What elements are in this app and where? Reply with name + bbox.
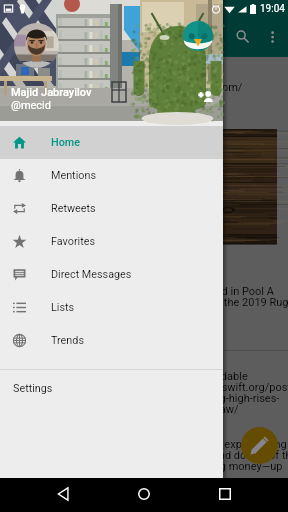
button[interactable]: Back bbox=[50, 480, 78, 508]
staticText: Several years experiencing bbox=[157, 438, 287, 451]
staticText: Settings bbox=[13, 382, 53, 395]
button[interactable]: Add account bbox=[197, 88, 215, 106]
staticText: Favorites bbox=[51, 235, 96, 248]
staticText: Retweets bbox=[51, 202, 96, 215]
staticText: of the 2019 Rugby World Cup bbox=[211, 296, 288, 309]
staticText: law/ bbox=[217, 403, 239, 416]
staticText: Mentions bbox=[51, 169, 96, 182]
button[interactable]: Favorites bbox=[0, 225, 223, 258]
staticText: building-high-rises- bbox=[187, 392, 280, 405]
button[interactable]: Mentions bbox=[0, 159, 223, 192]
staticText: Trends bbox=[51, 334, 84, 347]
button[interactable]: Lists bbox=[0, 291, 223, 324]
staticText: Japan beat Ireland in Pool A bbox=[137, 285, 274, 298]
button[interactable]: Compose tweet bbox=[241, 427, 278, 464]
button[interactable]: Profile photo bbox=[14, 23, 59, 68]
button[interactable]: More options bbox=[262, 26, 282, 46]
button[interactable]: Retweets bbox=[0, 192, 223, 225]
staticText: 19:04 bbox=[260, 3, 285, 15]
staticText: Direct Messages bbox=[51, 268, 132, 281]
staticText: @mecid bbox=[11, 99, 51, 112]
staticText: fundraising money—up bbox=[171, 460, 283, 473]
staticText: Majid Jabrayilov bbox=[11, 86, 92, 99]
staticText: https://mecid.github.io.com/ bbox=[102, 81, 243, 94]
staticText: Lists bbox=[51, 301, 75, 314]
button[interactable]: Home bbox=[0, 126, 223, 159]
staticText: the ups and downs of the bbox=[174, 449, 288, 462]
button[interactable]: Settings bbox=[0, 373, 223, 403]
button[interactable]: Recents bbox=[211, 480, 239, 508]
button[interactable]: Trends bbox=[0, 324, 223, 357]
staticText: Swift is really readable bbox=[138, 370, 248, 383]
button[interactable]: Search bbox=[232, 25, 252, 45]
button[interactable]: Direct Messages bbox=[0, 258, 223, 291]
staticText: Home bbox=[51, 136, 80, 149]
button[interactable]: Home bbox=[130, 480, 158, 508]
staticText: https://swift.org/post/ bbox=[186, 381, 288, 394]
